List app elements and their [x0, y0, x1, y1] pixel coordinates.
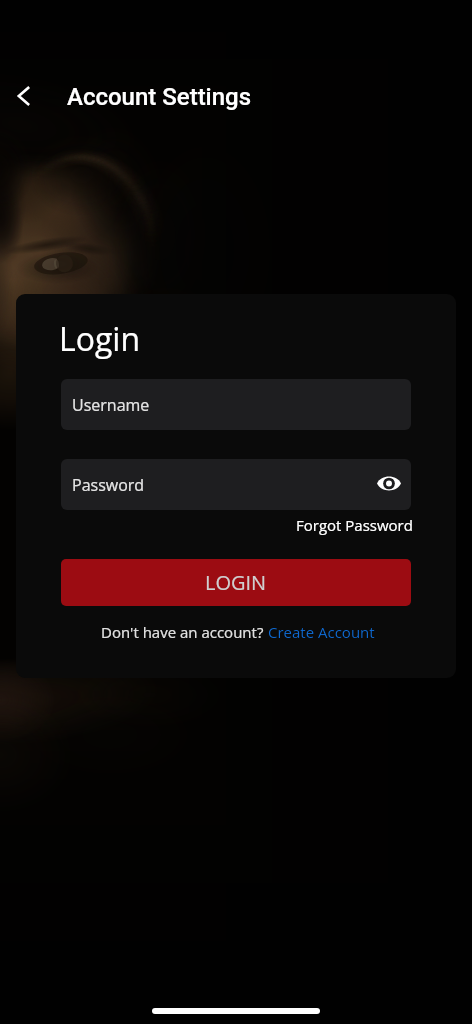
staticText: Password [72, 474, 145, 496]
button[interactable]: Show password [373, 467, 405, 499]
staticText: Account Settings [67, 83, 252, 111]
staticText: LOGIN [205, 569, 267, 596]
button[interactable]: Back [6, 78, 42, 114]
button[interactable]: Password [61, 459, 411, 510]
button[interactable]: LOGIN [61, 559, 411, 606]
staticText: Don't have an account? [101, 622, 268, 642]
staticText: Login [59, 317, 141, 361]
button[interactable]: Create Account [268, 622, 375, 642]
button[interactable]: Forgot Password [296, 515, 413, 535]
button[interactable]: Username [61, 379, 411, 430]
staticText: Username [72, 394, 150, 416]
